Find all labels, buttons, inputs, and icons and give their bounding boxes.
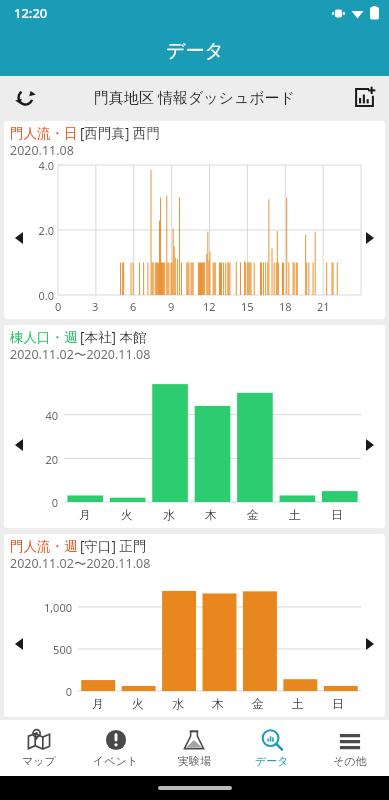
staticText: 水 [172, 696, 184, 711]
button[interactable]: Previous [10, 432, 28, 458]
staticText: 門人流・日 [10, 125, 78, 142]
staticText: 2.0 [38, 223, 54, 238]
staticText: イベント [93, 754, 139, 768]
button[interactable]: Next [361, 631, 379, 657]
staticText: 12:20 [14, 4, 48, 22]
staticText: 金 [247, 507, 259, 522]
staticText: 火 [132, 696, 144, 711]
button[interactable]: Previous [10, 631, 28, 657]
staticText: [守口] 正門 [80, 537, 147, 555]
staticText: 木 [205, 507, 217, 522]
staticText: その他 [333, 754, 367, 768]
staticText: 500 [53, 642, 72, 657]
button[interactable]: Next [361, 432, 379, 458]
button[interactable]: Add chart [347, 80, 381, 114]
staticText: 3 [92, 299, 99, 314]
staticText: データ [255, 754, 289, 768]
staticText: 12 [203, 299, 216, 314]
staticText: データ [166, 39, 224, 63]
staticText: 門真地区 情報ダッシュボード [94, 87, 296, 107]
staticText: 2020.11.02〜2020.11.08 [10, 346, 151, 363]
staticText: 2020.11.02〜2020.11.08 [10, 555, 151, 572]
staticText: 0 [55, 299, 62, 314]
staticText: 棟人口・週 [10, 329, 78, 346]
staticText: 土 [289, 507, 301, 522]
button[interactable]: その他 [311, 720, 389, 776]
staticText: 実験場 [178, 754, 211, 768]
staticText: 9 [168, 299, 175, 314]
button[interactable]: 門人流・週 [4, 534, 385, 717]
staticText: 21 [317, 299, 330, 314]
staticText: 0.0 [38, 288, 54, 303]
staticText: 40 [45, 408, 58, 423]
staticText: 0 [65, 684, 72, 699]
staticText: 月 [92, 696, 104, 711]
button[interactable]: Next [361, 225, 379, 251]
staticText: 4.0 [38, 158, 54, 173]
button[interactable]: 門人流・日 [4, 121, 385, 319]
button[interactable]: Refresh [8, 80, 42, 114]
staticText: 0 [51, 495, 58, 510]
staticText: [西門真] 西門 [80, 124, 160, 142]
button[interactable]: マップ [0, 720, 77, 776]
staticText: 20 [45, 452, 58, 467]
staticText: 門人流・週 [10, 538, 78, 555]
button[interactable]: 実験場 [155, 720, 233, 776]
staticText: 15 [241, 299, 254, 314]
staticText: [本社] 本館 [80, 328, 147, 346]
button[interactable]: 棟人口・週 [4, 325, 385, 528]
staticText: 金 [252, 696, 264, 711]
staticText: 6 [130, 299, 137, 314]
staticText: 日 [332, 696, 344, 711]
button[interactable]: データ [233, 720, 311, 776]
button[interactable]: イベント [77, 720, 155, 776]
staticText: マップ [22, 754, 56, 768]
staticText: 1,000 [43, 600, 72, 615]
staticText: 18 [279, 299, 292, 314]
button[interactable]: Previous [10, 225, 28, 251]
staticText: 火 [121, 507, 133, 522]
staticText: 土 [292, 696, 304, 711]
staticText: 月 [79, 507, 91, 522]
staticText: 水 [163, 507, 175, 522]
staticText: 木 [212, 696, 224, 711]
staticText: 2020.11.08 [10, 142, 74, 159]
staticText: 日 [331, 507, 343, 522]
